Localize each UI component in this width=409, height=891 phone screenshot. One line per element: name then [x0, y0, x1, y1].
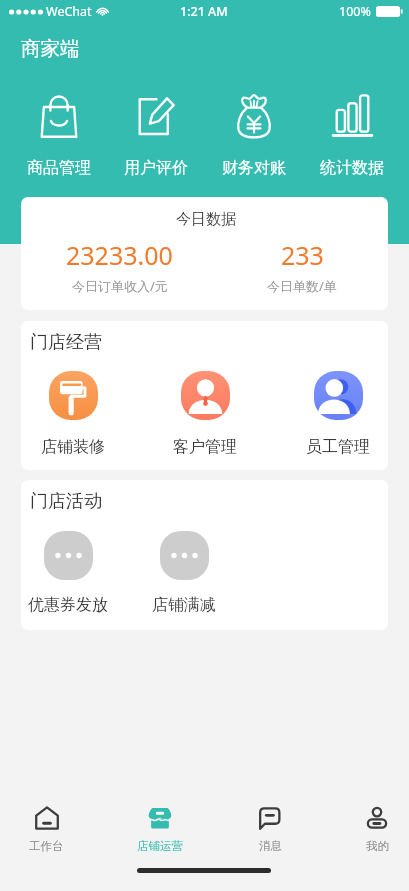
button[interactable]: 消息: [225, 806, 315, 856]
other: 财务对账: [236, 94, 272, 139]
button[interactable]: 员工管理: [280, 371, 388, 459]
staticText: 用户评价: [124, 158, 188, 178]
staticText: 店铺满减: [152, 595, 216, 615]
button[interactable]: 用户评价: [108, 90, 204, 180]
staticText: 工作台: [29, 839, 64, 853]
button[interactable]: 店铺装修: [21, 371, 131, 459]
button[interactable]: 功能: [21, 531, 126, 617]
staticText: 商家端: [21, 36, 80, 61]
button[interactable]: 店铺装修: [49, 371, 98, 420]
staticText: 今日数据: [176, 210, 236, 229]
button[interactable]: 功能: [44, 531, 93, 580]
staticText: 门店活动: [30, 490, 102, 513]
button[interactable]: 商品管理: [11, 90, 107, 180]
staticText: 今日单数/单: [267, 277, 337, 295]
staticText: 员工管理: [306, 437, 370, 457]
staticText: 消息: [259, 839, 282, 853]
other: 商品管理: [41, 95, 77, 138]
staticText: WeChat: [46, 3, 92, 20]
button[interactable]: 财务对账: [206, 90, 302, 180]
other: 我的: [365, 806, 389, 830]
button[interactable]: 客户管理: [181, 371, 230, 420]
button[interactable]: 统计数据: [304, 90, 400, 180]
staticText: 233: [281, 238, 324, 272]
button[interactable]: 功能: [126, 531, 242, 617]
staticText: 我的: [366, 839, 389, 853]
other: 用户评价: [137, 95, 176, 137]
staticText: 23233.00: [66, 238, 173, 272]
staticText: 客户管理: [173, 437, 237, 457]
staticText: 统计数据: [320, 158, 384, 178]
staticText: 100%: [339, 3, 371, 20]
staticText: 优惠券发放: [28, 595, 108, 615]
staticText: 门店经营: [30, 331, 102, 354]
button[interactable]: 工作台: [1, 806, 91, 856]
button[interactable]: 我的: [332, 806, 409, 856]
button[interactable]: 店铺运营: [115, 806, 205, 856]
other: 消息: [258, 806, 282, 830]
button[interactable]: 客户管理: [147, 371, 263, 459]
staticText: 店铺运营: [137, 839, 183, 853]
staticText: 1:21 AM: [180, 3, 228, 20]
button[interactable]: 员工管理: [314, 371, 363, 420]
staticText: 财务对账: [222, 158, 286, 178]
staticText: 商品管理: [27, 158, 91, 178]
other: 工作台: [35, 806, 59, 830]
other: 统计数据: [332, 94, 373, 138]
staticText: 今日订单收入/元: [72, 277, 168, 295]
other: 店铺运营: [148, 806, 172, 830]
staticText: 店铺装修: [41, 437, 105, 457]
button[interactable]: 功能: [160, 531, 209, 580]
